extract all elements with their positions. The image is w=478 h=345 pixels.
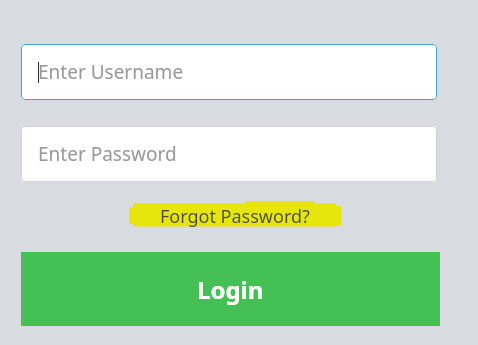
- staticText: Forgot Password?: [160, 204, 310, 229]
- staticText: Login: [197, 273, 264, 306]
- button[interactable]: Forgot Password?: [128, 200, 342, 232]
- staticText: Enter Password: [38, 141, 177, 167]
- button[interactable]: Enter Username: [21, 44, 437, 100]
- staticText: Enter Username: [38, 59, 184, 85]
- button[interactable]: Enter Password: [21, 126, 437, 182]
- button[interactable]: Login: [21, 252, 440, 326]
